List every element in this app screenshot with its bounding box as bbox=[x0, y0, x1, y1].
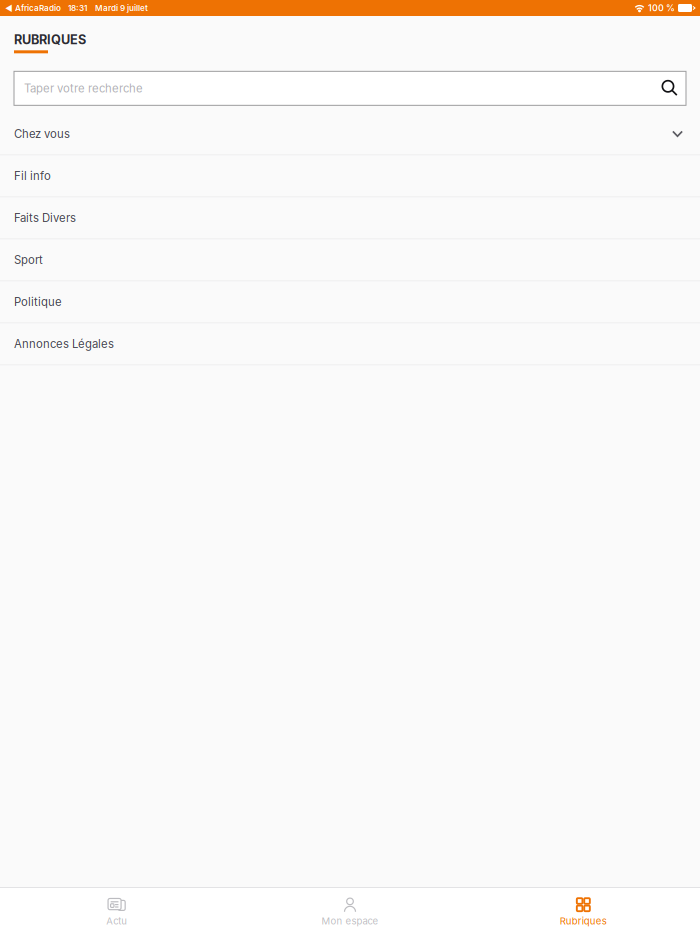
button[interactable]: Politique bbox=[0, 281, 700, 322]
button[interactable]: Faits Divers bbox=[0, 197, 700, 238]
staticText: ◀ AfricaRadio bbox=[5, 3, 61, 13]
staticText: Taper votre recherche bbox=[24, 81, 143, 95]
staticText: Politique bbox=[14, 295, 62, 309]
staticText: 18:31 bbox=[68, 3, 87, 13]
staticText: 100 % bbox=[648, 3, 675, 13]
staticText: Faits Divers bbox=[14, 211, 76, 225]
button[interactable]: Fil info bbox=[0, 155, 700, 196]
staticText: Annonces Légales bbox=[14, 337, 114, 351]
button[interactable]: Mon espace bbox=[233, 888, 467, 934]
button[interactable]: Annonces Légales bbox=[0, 323, 700, 364]
staticText: Sport bbox=[14, 253, 43, 267]
button[interactable]: Sport bbox=[0, 239, 700, 280]
button[interactable]: Actu bbox=[0, 888, 233, 934]
staticText: Mon espace bbox=[321, 915, 378, 927]
staticText: Rubriques bbox=[560, 915, 607, 927]
button[interactable]: Rubriques bbox=[467, 888, 700, 934]
staticText: RUBRIQUES bbox=[14, 32, 86, 47]
button[interactable]: Taper votre recherche bbox=[14, 71, 686, 105]
staticText: Actu bbox=[106, 915, 127, 927]
staticText: Mardi 9 juillet bbox=[95, 3, 148, 13]
staticText: Chez vous bbox=[14, 127, 70, 141]
button[interactable]: Chez vous bbox=[0, 113, 700, 154]
staticText: Fil info bbox=[14, 169, 51, 183]
